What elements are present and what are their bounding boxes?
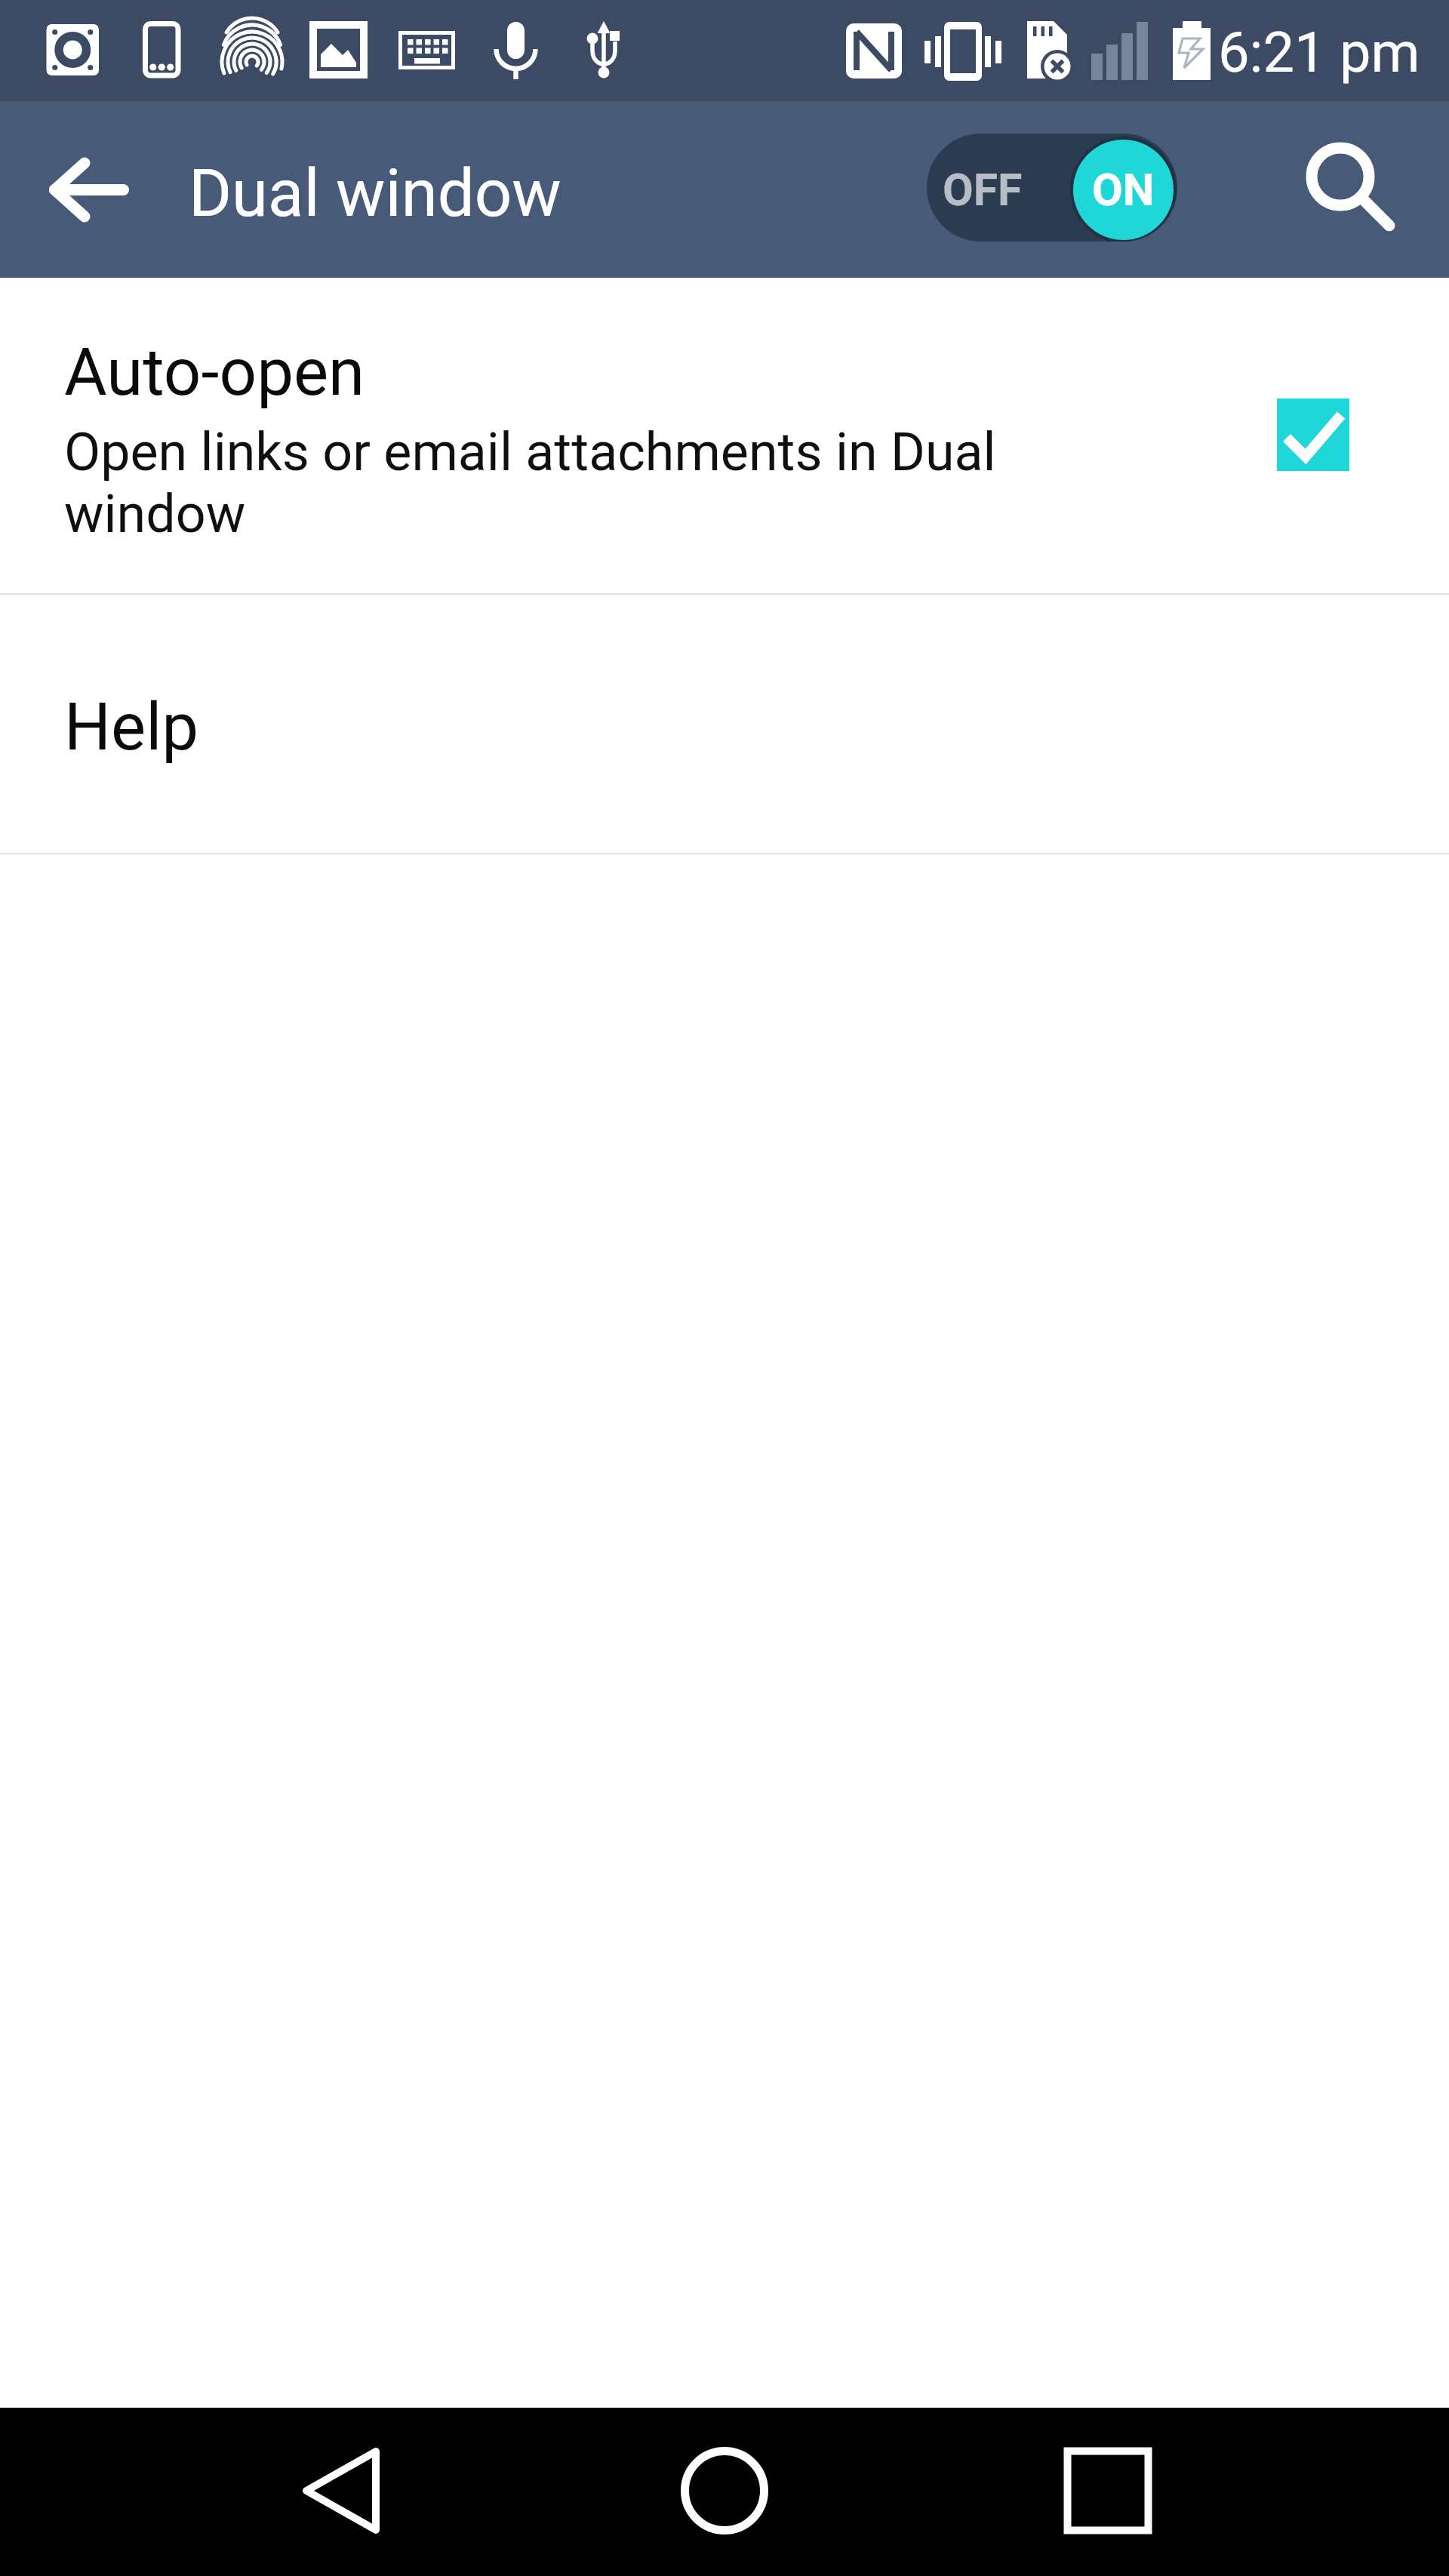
staticText: Help xyxy=(64,688,199,765)
button[interactable]: Help xyxy=(0,595,1449,853)
button[interactable]: OFF xyxy=(927,134,1177,242)
staticText: 6:21 pm xyxy=(1218,20,1420,85)
staticText: OFF xyxy=(943,164,1023,216)
button[interactable]: Auto-open xyxy=(0,278,1449,593)
staticText: Open links or email attachments in Dual … xyxy=(64,421,1015,545)
button[interactable]: Auto-open enabled xyxy=(1277,399,1349,471)
staticText: Auto-open xyxy=(64,334,365,411)
staticText: Dual window xyxy=(189,155,561,232)
button[interactable]: Back xyxy=(258,2408,424,2576)
button[interactable]: Home xyxy=(641,2408,808,2576)
staticText: ON xyxy=(1092,164,1155,216)
button[interactable]: Recent apps xyxy=(1025,2408,1191,2576)
button[interactable]: Search xyxy=(1260,101,1426,278)
button[interactable]: Navigate up xyxy=(8,101,171,278)
